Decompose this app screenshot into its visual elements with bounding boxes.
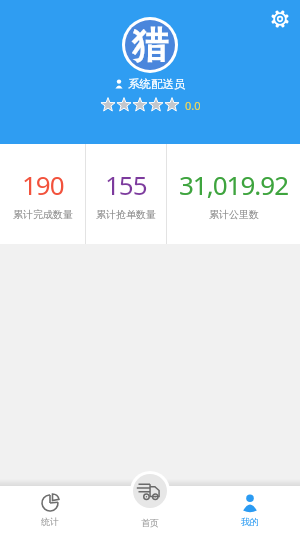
button[interactable] [271, 10, 289, 28]
button[interactable]: 我的 [200, 485, 300, 533]
button[interactable]: 155 [86, 144, 166, 244]
staticText: 首页 [141, 517, 159, 528]
staticText: 我的 [241, 516, 259, 527]
staticText: 累计完成数量 [13, 208, 73, 221]
staticText: 155 [105, 167, 147, 202]
staticText: 190 [22, 167, 64, 202]
button[interactable]: 系统配送员 [114, 76, 186, 92]
staticText: 累计公里数 [209, 208, 259, 221]
staticText: 猎 [132, 23, 168, 68]
button[interactable]: 统计 [0, 485, 100, 533]
staticText: 31,019.92 [179, 167, 289, 202]
button[interactable] [133, 474, 167, 508]
button[interactable]: 猎 [125, 20, 175, 70]
button[interactable]: 首页 [100, 485, 200, 533]
button[interactable]: 31,019.92 [167, 144, 300, 244]
staticText: 系统配送员 [128, 77, 186, 91]
button[interactable]: 190 [0, 144, 85, 244]
staticText: 累计抢单数量 [96, 208, 156, 221]
staticText: 0.0 [185, 98, 201, 113]
staticText: 统计 [41, 516, 59, 527]
